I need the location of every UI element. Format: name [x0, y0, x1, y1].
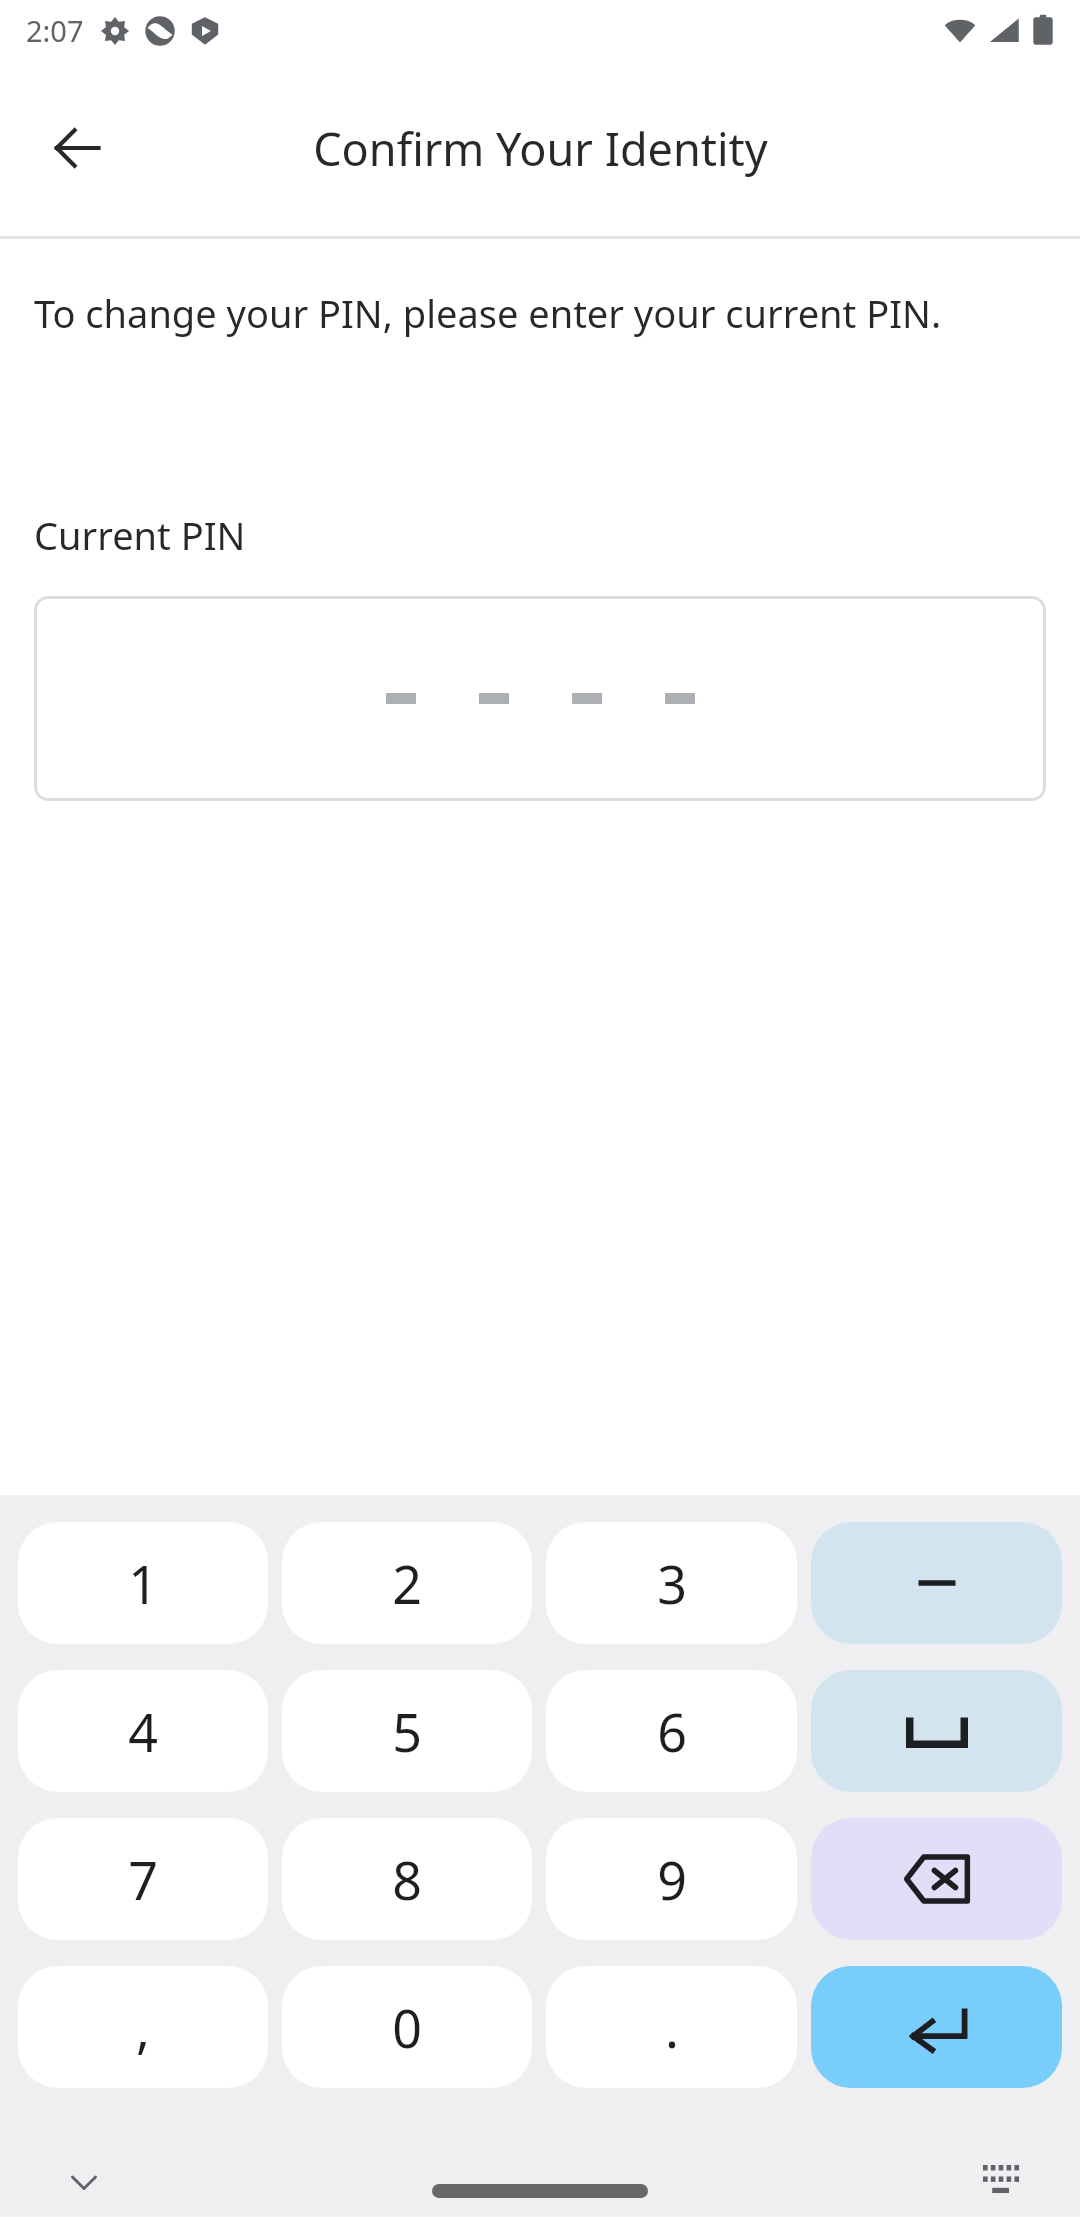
staticText: 0 [392, 1992, 422, 2063]
button[interactable]: 9 [546, 1818, 797, 1940]
button[interactable]: Back [26, 97, 128, 199]
button[interactable] [34, 596, 1046, 801]
button[interactable]: Minus [811, 1522, 1062, 1644]
button[interactable]: , [18, 1966, 268, 2088]
staticText: Current PIN [34, 509, 246, 561]
button[interactable]: Enter [811, 1966, 1062, 2088]
button[interactable]: 7 [18, 1818, 268, 1940]
staticText: , [136, 1992, 150, 2063]
button[interactable]: 4 [18, 1670, 268, 1792]
staticText: . [665, 1992, 679, 2063]
staticText: 2 [392, 1548, 422, 1619]
button[interactable]: 0 [282, 1966, 532, 2088]
staticText: 7 [128, 1844, 158, 1915]
button[interactable]: 1 [18, 1522, 268, 1644]
button[interactable]: Hide keyboard [52, 2150, 116, 2214]
staticText: 2:07 [26, 11, 84, 50]
staticText: Confirm Your Identity [313, 118, 768, 179]
staticText: 5 [392, 1696, 422, 1767]
staticText: 1 [128, 1548, 158, 1619]
staticText: To change your PIN, please enter your cu… [34, 287, 942, 339]
button[interactable]: Backspace [811, 1818, 1062, 1940]
staticText: 8 [392, 1844, 422, 1915]
staticText: 3 [657, 1548, 687, 1619]
button[interactable]: 5 [282, 1670, 532, 1792]
staticText: 9 [657, 1844, 687, 1915]
button[interactable]: 3 [546, 1522, 797, 1644]
button[interactable]: . [546, 1966, 797, 2088]
button[interactable]: 2 [282, 1522, 532, 1644]
button[interactable]: 8 [282, 1818, 532, 1940]
button[interactable]: Switch keyboard [972, 2150, 1036, 2214]
staticText: 6 [657, 1696, 687, 1767]
button[interactable]: 6 [546, 1670, 797, 1792]
button[interactable]: Space [811, 1670, 1062, 1792]
staticText: 4 [128, 1696, 158, 1767]
